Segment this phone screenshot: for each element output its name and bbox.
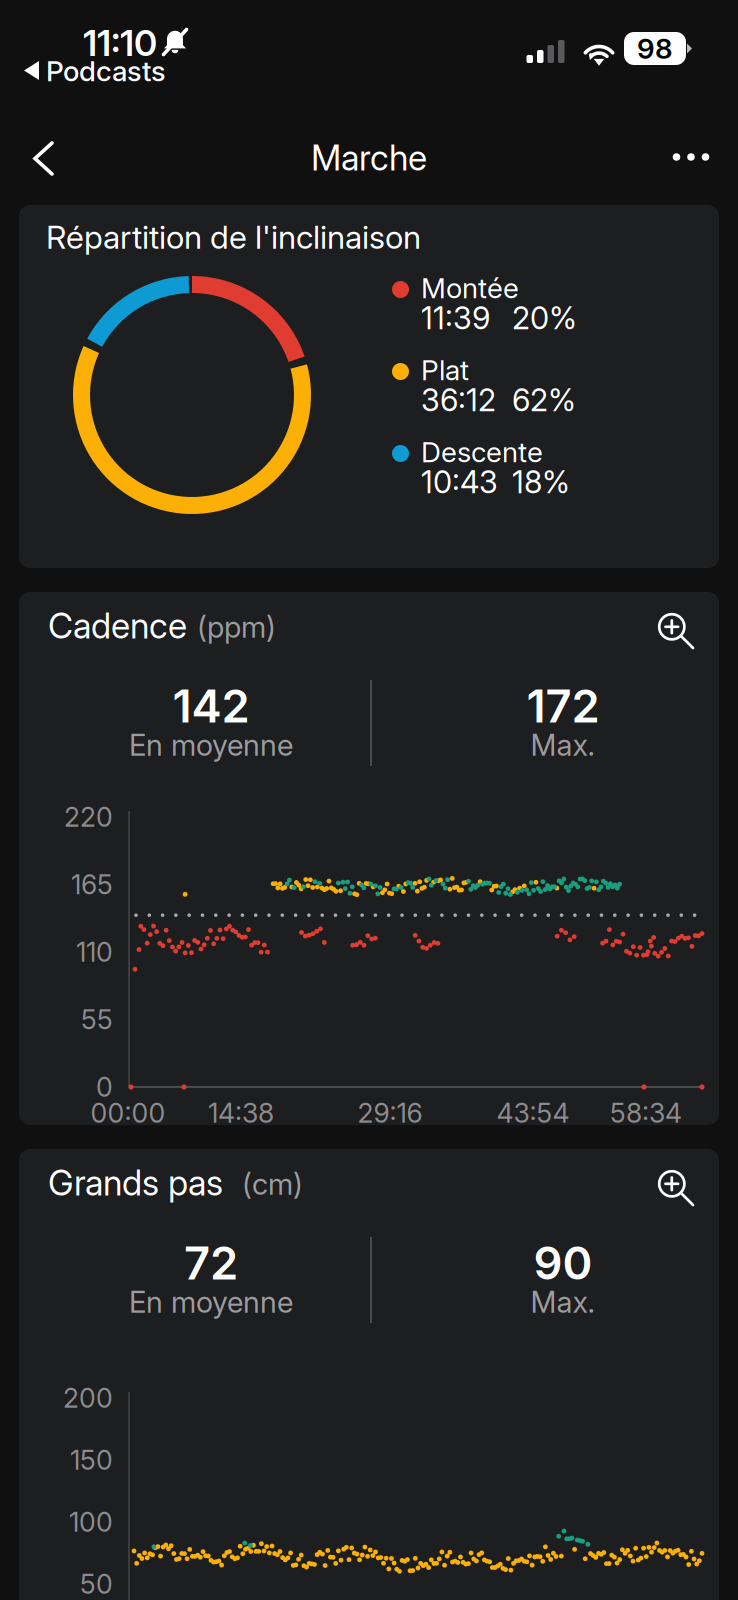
- staticText: Descente: [421, 435, 543, 469]
- button[interactable]: Plus d'options: [653, 119, 729, 195]
- staticText: 11:10: [83, 21, 157, 65]
- staticText: 55: [81, 1003, 113, 1036]
- button[interactable]: Agrandir le graphique: [653, 608, 697, 652]
- staticText: Grands pas: [48, 1162, 223, 1204]
- staticText: Plat: [421, 353, 469, 387]
- staticText: Cadence: [48, 605, 187, 647]
- staticText: Max.: [530, 1284, 595, 1320]
- staticText: 200: [63, 1382, 113, 1414]
- staticText: 0: [96, 1071, 113, 1103]
- staticText: En moyenne: [129, 1284, 293, 1320]
- staticText: 50: [80, 1568, 113, 1600]
- staticText: 100: [69, 1506, 113, 1538]
- staticText: (ppm): [197, 609, 276, 645]
- staticText: 58:34: [610, 1097, 682, 1129]
- staticText: 62%: [512, 381, 576, 418]
- staticText: 11:39: [421, 299, 490, 336]
- staticText: Podcasts: [46, 54, 166, 88]
- staticText: 14:38: [208, 1097, 274, 1129]
- staticText: 142: [172, 679, 249, 733]
- staticText: En moyenne: [129, 727, 293, 763]
- staticText: 43:54: [496, 1097, 569, 1129]
- staticText: 29:16: [357, 1097, 422, 1129]
- staticText: 98: [637, 32, 673, 65]
- staticText: 220: [64, 801, 113, 833]
- staticText: Répartition de l'inclinaison: [46, 218, 421, 256]
- staticText: 00:00: [90, 1097, 165, 1129]
- staticText: 165: [71, 868, 113, 901]
- staticText: 10:43: [421, 463, 498, 500]
- staticText: 172: [526, 679, 599, 733]
- staticText: 90: [533, 1236, 592, 1290]
- staticText: 72: [184, 1236, 238, 1290]
- staticText: Marche: [311, 137, 427, 179]
- staticText: Montée: [421, 271, 519, 305]
- staticText: 20%: [512, 299, 577, 336]
- staticText: (cm): [242, 1166, 303, 1202]
- button[interactable]: Retour: [3, 121, 79, 196]
- staticText: 36:12: [421, 381, 496, 418]
- staticText: 18%: [512, 463, 570, 500]
- staticText: Max.: [530, 727, 595, 763]
- staticText: 110: [76, 936, 113, 968]
- button[interactable]: Agrandir le graphique: [653, 1165, 697, 1209]
- staticText: 150: [70, 1444, 113, 1476]
